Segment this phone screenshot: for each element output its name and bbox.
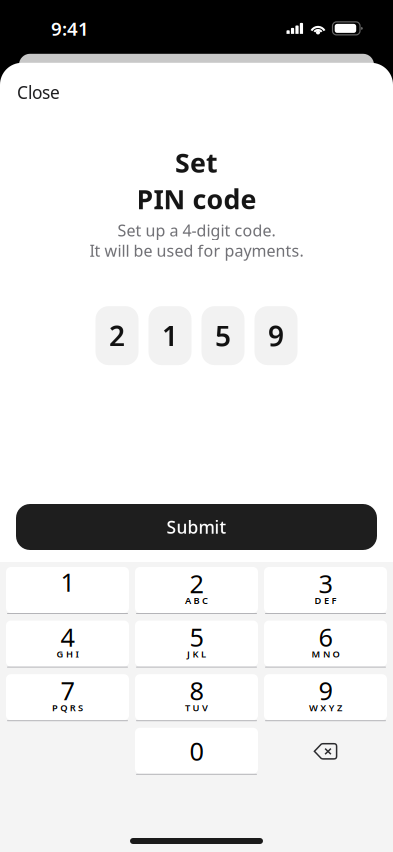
staticText: L [201,648,206,660]
staticText: 5 [215,317,231,354]
staticText: Q [60,701,67,714]
staticText: C [202,594,208,606]
button[interactable]: 8 [135,674,258,721]
staticText: 0 [189,734,203,768]
button[interactable]: 0 [135,728,258,775]
staticText: R [70,701,76,714]
staticText: 1 [60,565,74,599]
staticText: M [312,648,321,660]
button[interactable]: 9 [264,674,387,721]
staticText: Y [329,701,335,714]
staticText: X [320,701,326,714]
button[interactable]: 2 [135,567,258,614]
button[interactable]: Submit [16,504,377,550]
button[interactable]: 6 [264,621,387,668]
staticText: 8 [189,674,203,707]
staticText: Submit [166,515,226,538]
staticText: H [66,648,73,660]
button[interactable]: 5 [135,621,258,668]
staticText: 6 [318,620,332,654]
staticText: 9 [318,674,332,707]
staticText: O [332,648,339,660]
button[interactable]: 7 [6,674,129,721]
button[interactable]: 3 [264,567,387,614]
staticText: 4 [60,620,74,654]
staticText: F [331,594,336,606]
staticText: J [187,648,190,660]
button[interactable]: Close [15,73,62,112]
staticText: K [192,648,198,660]
staticText: Close [17,81,60,104]
staticText: 2 [189,566,203,600]
staticText: U [192,701,199,714]
staticText: D [315,594,322,606]
staticText: 5 [189,620,203,654]
staticText: T [185,701,190,714]
staticText: 7 [60,674,74,707]
staticText: PIN code [136,181,256,217]
button[interactable]: Delete [264,728,387,775]
staticText: B [193,594,199,606]
staticText: P [52,701,58,714]
staticText: 3 [318,566,332,600]
button[interactable]: 4 [6,621,129,668]
button[interactable]: 1 [6,567,129,614]
staticText: V [202,701,208,714]
staticText: W [309,701,318,714]
staticText: It will be used for payments. [89,240,303,261]
staticText: I [75,648,78,660]
staticText: 2 [109,317,125,354]
staticText: E [324,594,329,606]
staticText: S [78,701,83,714]
staticText: 9:41 [51,16,89,41]
staticText: Set up a 4-digit code. [117,220,275,241]
staticText: Set [175,145,218,180]
staticText: G [57,648,64,660]
staticText: Z [337,701,342,714]
staticText: 1 [162,317,178,354]
staticText: A [185,594,191,606]
staticText: N [323,648,330,660]
staticText: 9 [268,317,284,354]
